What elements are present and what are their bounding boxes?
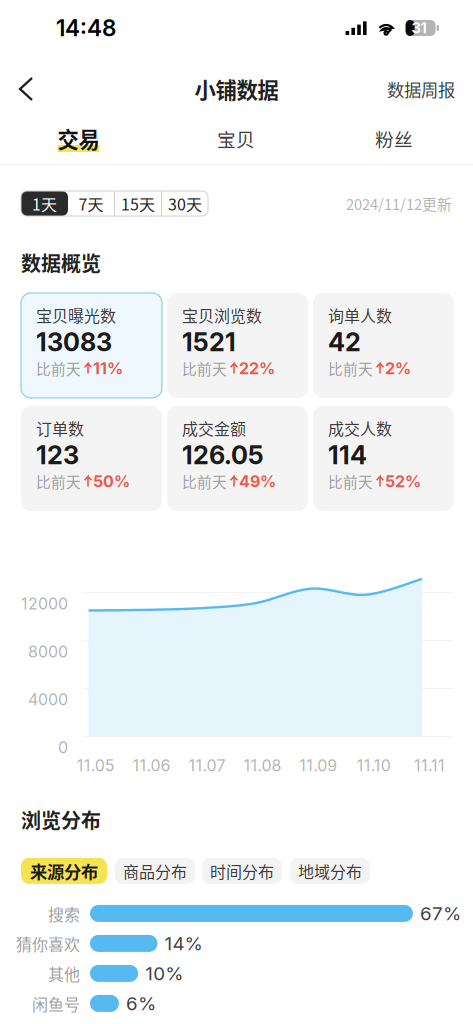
staticText: 来源分布 bbox=[30, 858, 98, 883]
staticText: 14:48 bbox=[56, 14, 116, 42]
staticText: 30天 bbox=[168, 192, 202, 215]
button[interactable]: 宝贝 bbox=[157, 117, 315, 157]
staticText: 0 bbox=[58, 738, 68, 757]
staticText: 数据概览 bbox=[21, 248, 101, 277]
button[interactable]: 1天 bbox=[21, 191, 68, 216]
button[interactable]: 30天 bbox=[162, 191, 208, 216]
staticText: 数据周报 bbox=[387, 76, 455, 102]
staticText: 2% bbox=[385, 359, 411, 378]
staticText: 1天 bbox=[32, 192, 57, 215]
staticText: 宝贝浏览数 bbox=[182, 303, 262, 327]
staticText: 粉丝 bbox=[375, 125, 413, 152]
staticText: 浏览分布 bbox=[21, 805, 101, 834]
button[interactable]: 交易 bbox=[0, 117, 157, 157]
staticText: 114 bbox=[328, 440, 367, 470]
staticText: 13083 bbox=[36, 327, 112, 357]
staticText: 交易 bbox=[57, 123, 99, 154]
staticText: 4000 bbox=[28, 690, 68, 709]
staticText: 比前天 bbox=[36, 358, 81, 379]
staticText: 商品分布 bbox=[123, 859, 187, 882]
staticText: 15天 bbox=[121, 192, 155, 215]
staticText: 地域分布 bbox=[298, 859, 362, 882]
staticText: 67% bbox=[420, 902, 461, 925]
button[interactable]: 数据周报 bbox=[375, 66, 473, 112]
button[interactable]: 询单人数 bbox=[313, 293, 454, 398]
staticText: 11.07 bbox=[188, 756, 225, 775]
button[interactable]: 来源分布 bbox=[21, 858, 107, 884]
staticText: 31 bbox=[412, 19, 427, 37]
staticText: 123 bbox=[36, 440, 79, 470]
button[interactable]: 地域分布 bbox=[290, 858, 370, 884]
staticText: 成交金额 bbox=[182, 416, 246, 440]
staticText: 22% bbox=[239, 359, 275, 378]
staticText: 成交人数 bbox=[328, 416, 392, 440]
staticText: 42 bbox=[328, 327, 361, 357]
button[interactable]: 宝贝曝光数 bbox=[21, 293, 162, 398]
staticText: 比前天 bbox=[328, 471, 373, 492]
staticText: 11% bbox=[93, 359, 123, 378]
staticText: 搜索 bbox=[48, 902, 80, 925]
staticText: 10% bbox=[145, 962, 183, 985]
staticText: 比前天 bbox=[328, 358, 373, 379]
staticText: 11.08 bbox=[244, 756, 282, 775]
button[interactable]: 成交金额 bbox=[167, 406, 308, 511]
staticText: 猜你喜欢 bbox=[16, 932, 80, 955]
staticText: 闲鱼号 bbox=[32, 992, 80, 1015]
staticText: 50% bbox=[93, 472, 130, 491]
staticText: 8000 bbox=[28, 642, 68, 661]
button[interactable]: 宝贝浏览数 bbox=[167, 293, 308, 398]
staticText: 6% bbox=[126, 992, 156, 1015]
staticText: 2024/11/12更新 bbox=[346, 193, 452, 214]
staticText: 11.11 bbox=[414, 756, 445, 775]
button[interactable]: 15天 bbox=[115, 191, 161, 216]
staticText: 126.05 bbox=[182, 440, 264, 470]
staticText: 14% bbox=[164, 932, 202, 955]
staticText: 11.05 bbox=[77, 756, 115, 775]
button[interactable]: 订单数 bbox=[21, 406, 162, 511]
button[interactable]: 商品分布 bbox=[115, 858, 195, 884]
staticText: 11.06 bbox=[132, 756, 170, 775]
staticText: 其他 bbox=[48, 962, 80, 985]
staticText: 小铺数据 bbox=[194, 74, 278, 104]
button[interactable]: 粉丝 bbox=[315, 117, 473, 157]
staticText: 11.09 bbox=[299, 756, 337, 775]
button[interactable]: 成交人数 bbox=[313, 406, 454, 511]
staticText: 49% bbox=[239, 472, 276, 491]
staticText: 宝贝 bbox=[217, 125, 255, 152]
staticText: 11.10 bbox=[357, 756, 391, 775]
staticText: 52% bbox=[385, 472, 421, 491]
staticText: 询单人数 bbox=[328, 303, 392, 327]
button[interactable]: 时间分布 bbox=[202, 858, 282, 884]
staticText: 时间分布 bbox=[210, 859, 274, 882]
staticText: 比前天 bbox=[36, 471, 81, 492]
staticText: 7天 bbox=[78, 192, 103, 215]
button[interactable]: 返回 bbox=[0, 68, 46, 110]
button[interactable]: 7天 bbox=[68, 191, 114, 216]
staticText: 比前天 bbox=[182, 358, 227, 379]
staticText: 宝贝曝光数 bbox=[36, 303, 116, 327]
staticText: 比前天 bbox=[182, 471, 227, 492]
staticText: 12000 bbox=[21, 594, 68, 613]
staticText: 订单数 bbox=[36, 416, 84, 440]
staticText: 1521 bbox=[182, 327, 236, 357]
